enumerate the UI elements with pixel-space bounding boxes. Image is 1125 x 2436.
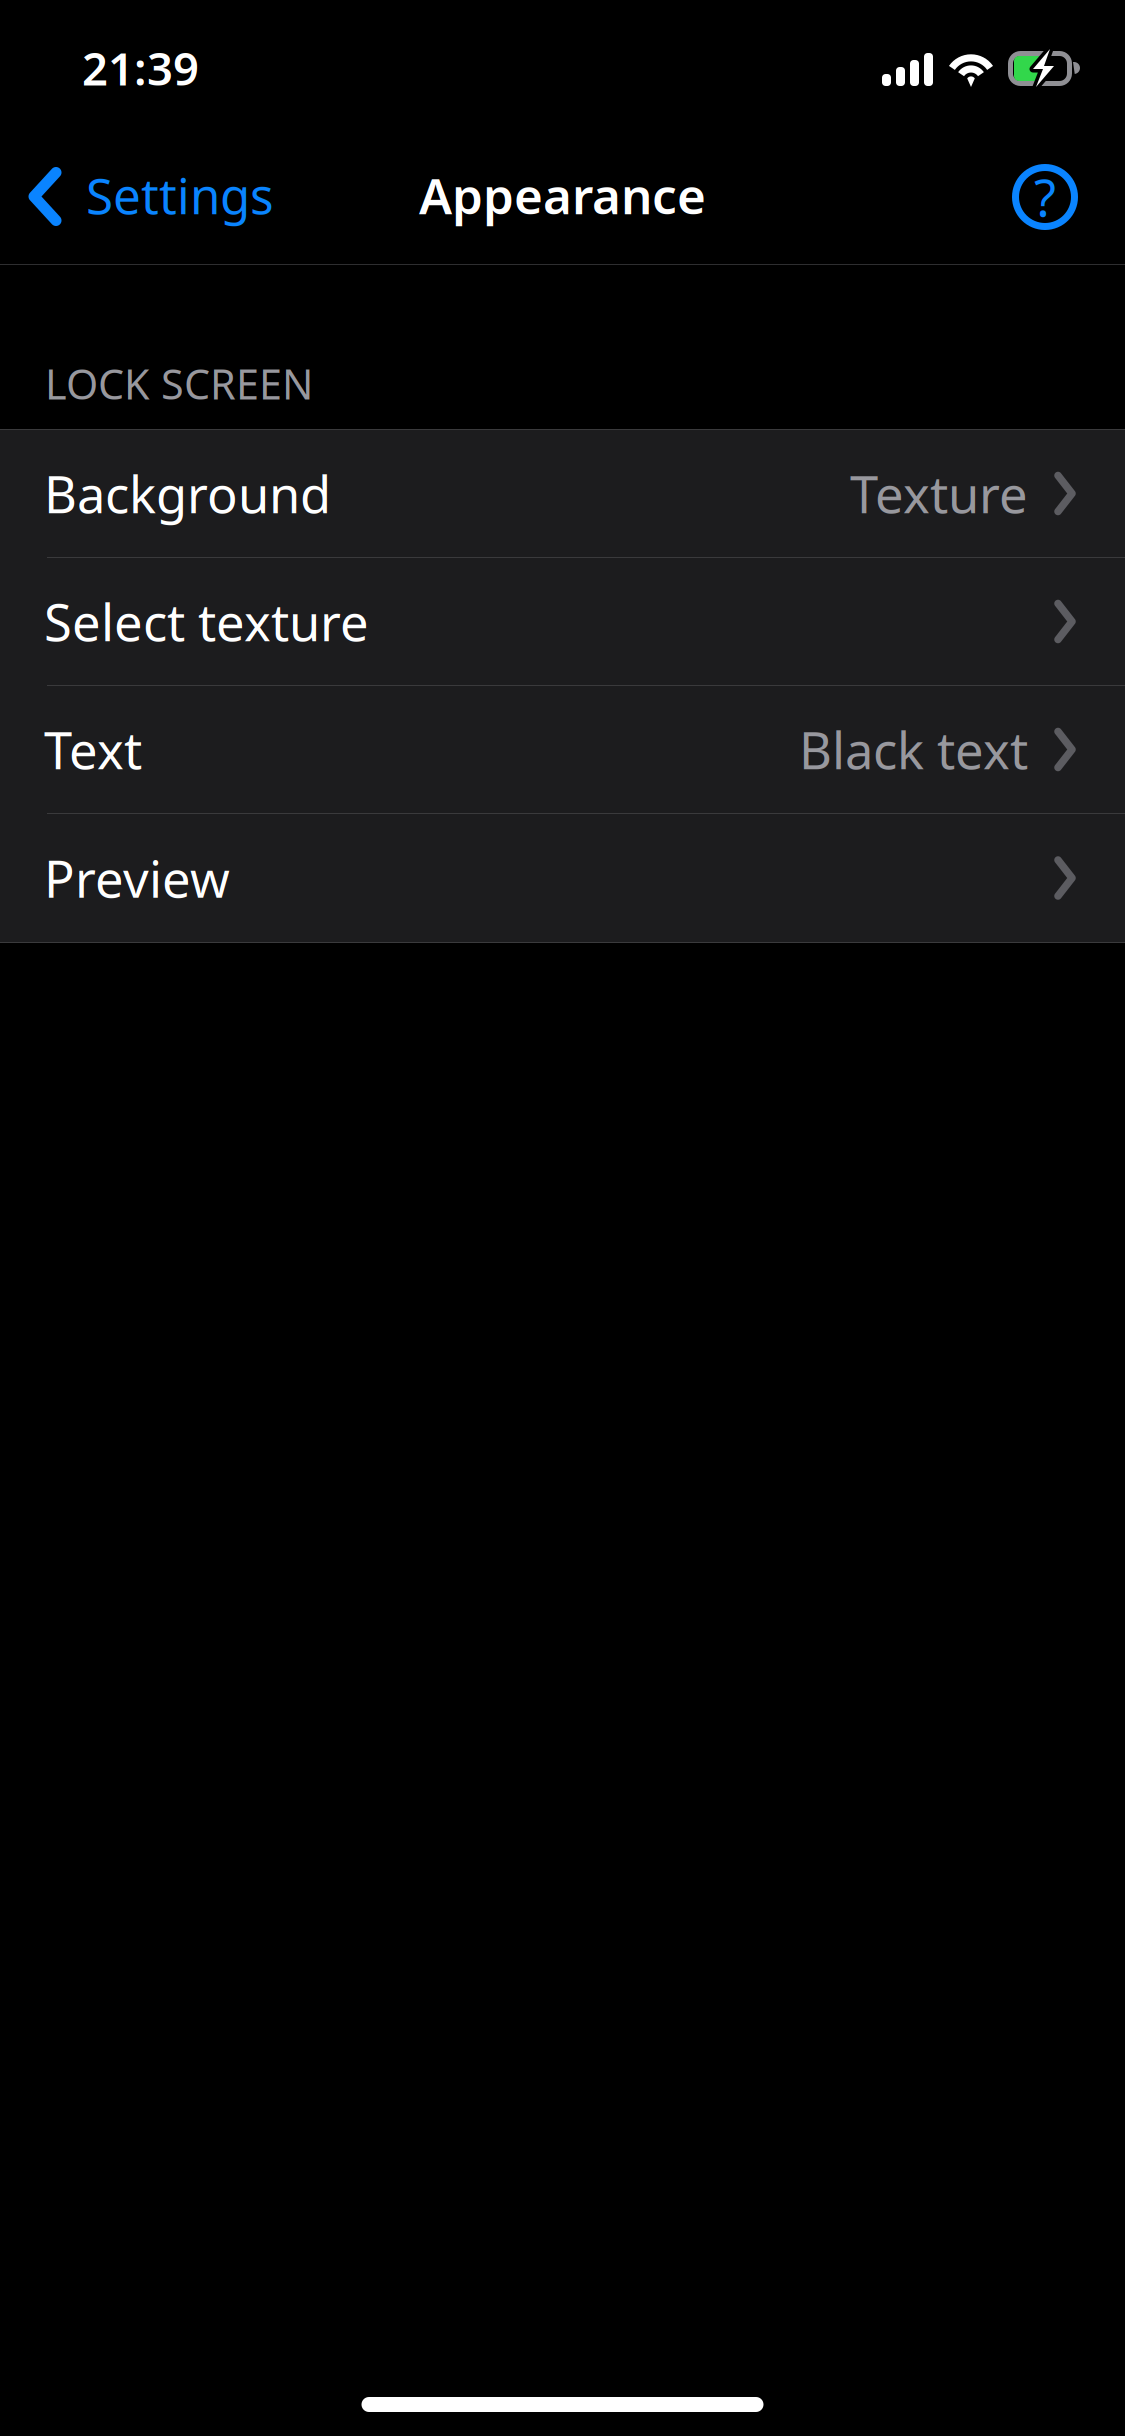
staticText: Settings	[86, 162, 274, 228]
button[interactable]: Settings	[0, 145, 274, 245]
staticText: Text	[44, 716, 142, 783]
staticText: ?	[1034, 163, 1056, 231]
button[interactable]: Select texture	[0, 558, 1125, 686]
staticText: Background	[44, 460, 331, 527]
button[interactable]: Background	[0, 430, 1125, 558]
staticText: LOCK SCREEN	[45, 356, 313, 411]
staticText: Black text	[799, 716, 1028, 783]
staticText: Preview	[44, 844, 230, 912]
button[interactable]: Preview	[0, 814, 1125, 942]
staticText: Texture	[850, 460, 1028, 527]
staticText: 21:39	[82, 38, 199, 98]
staticText: Select texture	[44, 588, 369, 655]
button[interactable]: Text	[0, 686, 1125, 814]
staticText: Appearance	[419, 162, 706, 228]
button[interactable]: Help	[997, 145, 1093, 245]
